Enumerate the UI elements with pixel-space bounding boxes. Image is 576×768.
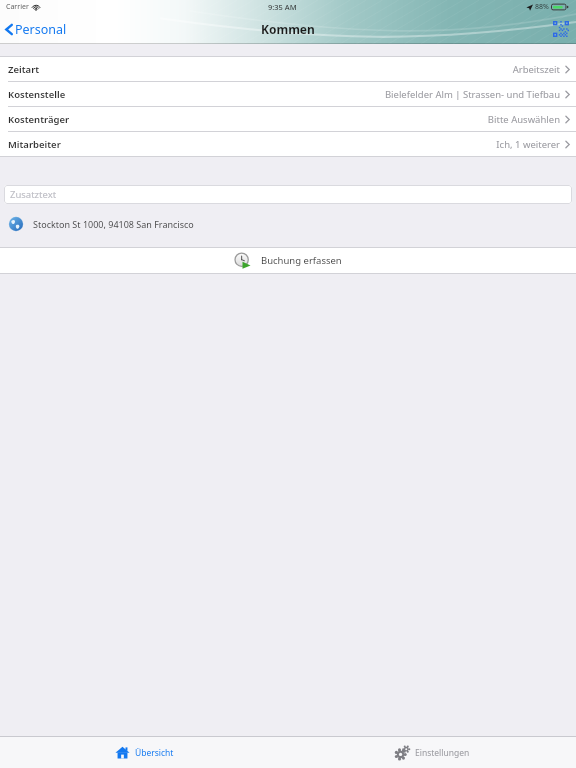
button[interactable]: Übersicht	[0, 737, 288, 768]
staticText: Bitte Auswählen	[487, 113, 560, 126]
staticText: Carrier	[6, 2, 29, 12]
button[interactable]: Personal	[0, 17, 75, 42]
staticText: Einstellungen	[415, 747, 470, 759]
button[interactable]: Zeitart	[0, 57, 576, 81]
staticText: Bielefelder Alm | Strassen- und Tiefbau	[384, 88, 560, 101]
staticText: Kommen	[261, 21, 315, 37]
staticText: Stockton St 1000, 94108 San Francisco	[33, 218, 194, 230]
button[interactable]: Kostenträger	[0, 107, 576, 131]
button[interactable]: Kostenstelle	[0, 82, 576, 106]
staticText: Kostenstelle	[8, 88, 66, 101]
button[interactable]: Einstellungen	[288, 737, 576, 768]
staticText: Personal	[15, 21, 67, 38]
button[interactable]: Zusatztext	[4, 185, 572, 204]
staticText: Mitarbeiter	[8, 138, 61, 151]
staticText: Zusatztext	[10, 188, 57, 201]
staticText: Kostenträger	[8, 113, 70, 126]
staticText: Ich, 1 weiterer	[496, 138, 560, 151]
button[interactable]: Mitarbeiter	[0, 132, 576, 156]
staticText: Übersicht	[135, 747, 174, 759]
staticText: Zeitart	[8, 63, 40, 76]
staticText: Buchung erfassen	[261, 254, 342, 267]
staticText: Arbeitszeit	[512, 63, 560, 76]
button[interactable]: Buchung erfassen	[0, 248, 576, 273]
button[interactable]: Scan QR code	[550, 18, 572, 40]
staticText: 88%	[535, 2, 549, 12]
button[interactable]: Stockton St 1000, 94108 San Francisco	[0, 211, 576, 237]
staticText: 9:35 AM	[268, 2, 297, 12]
